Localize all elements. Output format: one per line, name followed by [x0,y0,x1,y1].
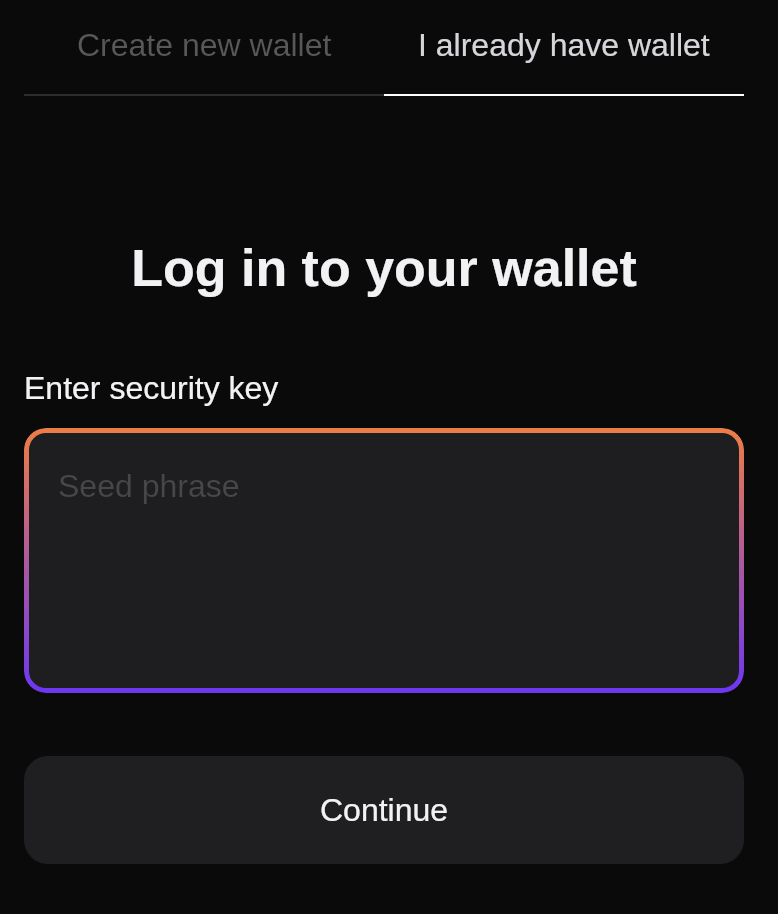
staticText: Continue [320,792,449,828]
button[interactable]: Continue [24,756,744,864]
staticText: I already have wallet [418,27,710,63]
button[interactable]: I already have wallet [384,0,744,100]
staticText: Create new wallet [77,27,332,63]
button[interactable]: Create new wallet [24,0,384,100]
staticText: Enter security key [24,370,279,406]
button[interactable]: Seed phrase input [24,428,744,693]
staticText: Log in to your wallet [24,239,744,297]
staticText: Seed phrase [58,468,240,504]
